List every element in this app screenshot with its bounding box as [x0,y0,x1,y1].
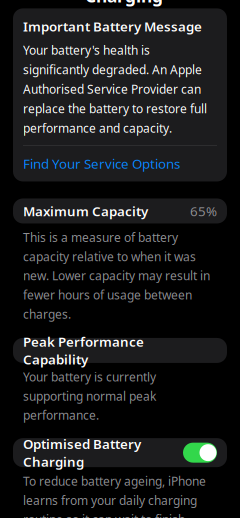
staticText: Peak Performance Capability [23,333,144,368]
staticText: 65% [190,202,217,220]
staticText: Optimised Battery Charging [23,435,141,470]
staticText: Find Your Service Options [23,155,180,172]
staticText: Battery Health & Charging [85,0,231,7]
staticText: Important Battery Message [23,17,202,35]
staticText: To reduce battery ageing, iPhone learns … [23,473,207,518]
staticText: Your battery is currently supporting nor… [23,369,156,423]
button[interactable]: Find Your Service Options [23,146,180,181]
button[interactable]: Optimised Battery Charging [0,438,240,467]
staticText: Maximum Capacity [23,202,148,220]
staticText: Your battery's health is significantly d… [23,42,207,136]
staticText: This is a measure of battery capacity re… [23,229,210,322]
